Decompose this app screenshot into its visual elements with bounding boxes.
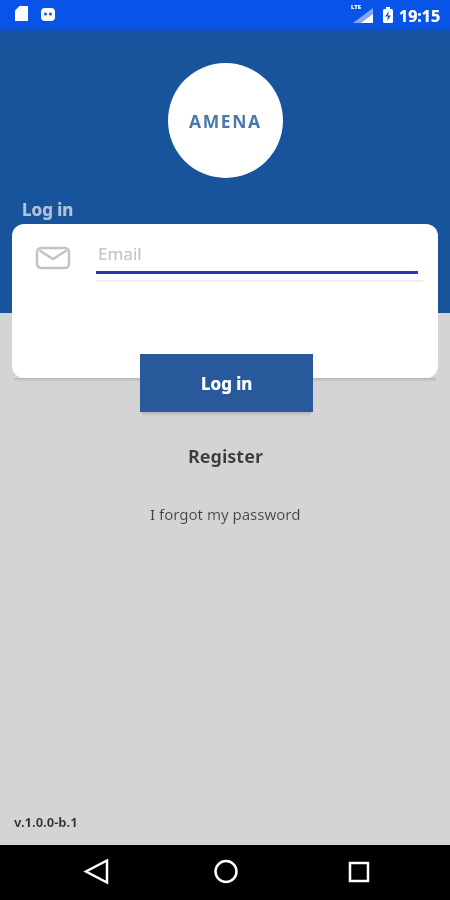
staticText: Email [98,242,142,265]
staticText: I forgot my password [150,504,301,524]
button[interactable]: Log in [140,354,313,412]
staticText: Register [188,444,263,469]
staticText: AMENA [189,109,262,133]
staticText: Log in [201,372,253,395]
button[interactable]: Register [0,443,450,469]
staticText: v.1.0.0-b.1 [14,813,78,831]
staticText: LTE [351,3,362,11]
staticText: Log in [22,198,74,221]
button[interactable]: I forgot my password [0,503,450,525]
staticText: 19:15 [399,5,441,27]
